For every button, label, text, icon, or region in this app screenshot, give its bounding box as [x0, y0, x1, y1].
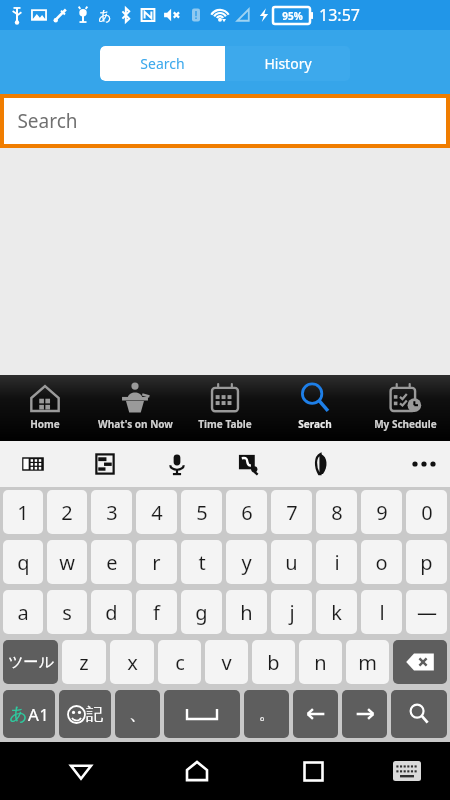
staticText: i: [334, 549, 340, 576]
button[interactable]: Period: [244, 690, 289, 738]
staticText: 4: [151, 499, 163, 526]
button[interactable]: z: [62, 640, 106, 684]
staticText: 0: [421, 499, 433, 526]
staticText: l: [379, 599, 385, 626]
button[interactable]: 5: [181, 490, 222, 534]
staticText: c: [175, 649, 185, 676]
staticText: Home: [30, 417, 60, 431]
staticText: 3: [106, 499, 118, 526]
staticText: p: [420, 549, 433, 576]
button[interactable]: Emoji and symbols: [59, 690, 111, 738]
staticText: 1: [39, 704, 49, 726]
button[interactable]: 0: [406, 490, 447, 534]
staticText: b: [267, 649, 280, 676]
button[interactable]: 2: [47, 490, 87, 534]
staticText: x: [127, 649, 138, 676]
button[interactable]: b: [252, 640, 295, 684]
staticText: y: [241, 549, 252, 576]
button[interactable]: Conversion: [90, 449, 120, 479]
button[interactable]: Move left: [293, 690, 338, 738]
button[interactable]: a: [3, 590, 43, 634]
button[interactable]: h: [226, 590, 267, 634]
button[interactable]: t: [181, 540, 222, 584]
button[interactable]: i: [316, 540, 357, 584]
button[interactable]: Handwriting: [234, 449, 264, 479]
button[interactable]: Home: [0, 375, 90, 441]
button[interactable]: Search: [391, 690, 447, 738]
button[interactable]: p: [406, 540, 447, 584]
button[interactable]: 9: [361, 490, 402, 534]
button[interactable]: u: [271, 540, 312, 584]
button[interactable]: Search: [100, 46, 225, 81]
button[interactable]: 6: [226, 490, 267, 534]
button[interactable]: Comma: [115, 690, 160, 738]
button[interactable]: Recents: [290, 748, 336, 794]
button[interactable]: Back: [58, 748, 104, 794]
staticText: 8: [331, 499, 343, 526]
staticText: a: [17, 599, 29, 626]
staticText: k: [331, 599, 342, 626]
button[interactable]: d: [91, 590, 132, 634]
button[interactable]: Hide keyboard: [384, 748, 430, 794]
button[interactable]: 3: [91, 490, 132, 534]
button[interactable]: g: [181, 590, 222, 634]
staticText: My Schedule: [374, 417, 437, 431]
button[interactable]: n: [299, 640, 342, 684]
button[interactable]: 7: [271, 490, 312, 534]
staticText: m: [358, 649, 377, 676]
staticText: u: [285, 549, 298, 576]
staticText: 9: [376, 499, 388, 526]
staticText: Time Table: [198, 417, 252, 431]
button[interactable]: q: [3, 540, 43, 584]
staticText: e: [106, 549, 118, 576]
button[interactable]: f: [136, 590, 177, 634]
button[interactable]: Search: [4, 98, 446, 144]
button[interactable]: —: [406, 590, 447, 634]
staticText: w: [59, 549, 75, 576]
button[interactable]: 1: [3, 490, 43, 534]
staticText: 1: [17, 499, 29, 526]
staticText: Search: [17, 108, 78, 134]
button[interactable]: y: [226, 540, 267, 584]
button[interactable]: c: [158, 640, 201, 684]
button[interactable]: r: [136, 540, 177, 584]
staticText: 7: [286, 499, 298, 526]
button[interactable]: More options: [404, 444, 444, 484]
staticText: 。: [259, 704, 275, 724]
staticText: v: [221, 649, 232, 676]
staticText: n: [314, 649, 327, 676]
staticText: 95%: [282, 9, 303, 23]
button[interactable]: Serach: [270, 375, 360, 441]
staticText: —: [417, 599, 437, 626]
button[interactable]: 4: [136, 490, 177, 534]
button[interactable]: My Schedule: [360, 375, 450, 441]
button[interactable]: 8: [316, 490, 357, 534]
button[interactable]: Backspace: [393, 640, 447, 684]
button[interactable]: j: [271, 590, 312, 634]
button[interactable]: What's on Now: [90, 375, 180, 441]
button[interactable]: Home: [174, 748, 220, 794]
button[interactable]: Move right: [342, 690, 387, 738]
button[interactable]: w: [47, 540, 87, 584]
button[interactable]: o: [361, 540, 402, 584]
button[interactable]: History: [225, 46, 350, 81]
button[interactable]: m: [346, 640, 389, 684]
button[interactable]: l: [361, 590, 402, 634]
button[interactable]: Voice input: [162, 449, 192, 479]
staticText: 記: [86, 704, 103, 725]
staticText: t: [198, 549, 206, 576]
staticText: g: [195, 599, 208, 626]
button[interactable]: s: [47, 590, 87, 634]
button[interactable]: Dictionary: [306, 449, 336, 479]
button[interactable]: v: [205, 640, 248, 684]
button[interactable]: Input mode: [3, 690, 55, 738]
staticText: o: [375, 549, 388, 576]
button[interactable]: e: [91, 540, 132, 584]
button[interactable]: k: [316, 590, 357, 634]
button[interactable]: Space: [164, 690, 240, 738]
button[interactable]: ツール: [3, 640, 58, 684]
button[interactable]: Time Table: [180, 375, 270, 441]
button[interactable]: x: [110, 640, 154, 684]
button[interactable]: Keyboard layout: [18, 449, 48, 479]
staticText: あ: [9, 703, 28, 726]
